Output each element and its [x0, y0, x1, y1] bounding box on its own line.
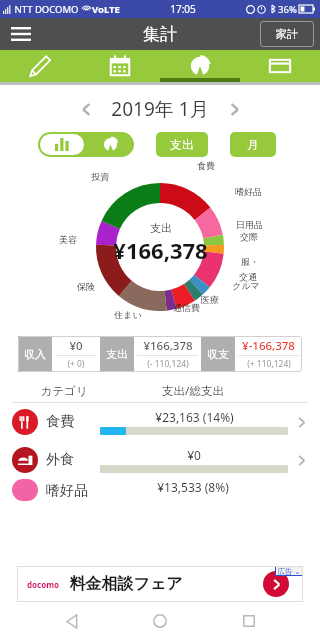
staticText: 医療: [201, 294, 219, 305]
staticText: カテゴリ: [40, 384, 88, 398]
button[interactable]: docomo: [17, 566, 303, 602]
staticText: 支出: [150, 221, 172, 235]
staticText: 外食: [46, 451, 74, 469]
button[interactable]: [38, 132, 134, 157]
button[interactable]: 支出: [156, 132, 208, 157]
staticText: 2019年 1月: [111, 96, 209, 122]
staticText: ¥0: [69, 338, 83, 354]
staticText: docomo: [27, 579, 59, 590]
button[interactable]: Previous month: [71, 94, 101, 124]
button[interactable]: 家計: [260, 21, 314, 47]
staticText: ¥0: [187, 447, 201, 463]
staticText: NTT DOCOMO: [14, 3, 79, 16]
staticText: 交通: [239, 271, 257, 282]
staticText: 嗜好品: [235, 186, 262, 197]
staticText: ¥23,163 (14%): [155, 409, 234, 425]
staticText: 支出/総支出: [162, 383, 224, 399]
staticText: 美容: [59, 234, 77, 245]
staticText: VoLTE: [92, 3, 120, 16]
staticText: 料金相談フェア: [69, 574, 183, 594]
staticText: 支出: [170, 137, 194, 152]
button[interactable]: 嗜好品: [0, 479, 320, 501]
button[interactable]: Menu: [8, 21, 34, 47]
staticText: 収入: [24, 347, 46, 361]
staticText: 支出: [106, 347, 128, 361]
button[interactable]: Accounts: [240, 50, 320, 82]
staticText: 食費: [46, 413, 74, 431]
staticText: 広告 ⌄: [277, 566, 301, 576]
staticText: 集計: [143, 24, 177, 45]
staticText: 嗜好品: [46, 482, 88, 500]
staticText: 投資: [91, 171, 109, 182]
staticText: 交際: [240, 231, 258, 242]
button[interactable]: 月: [230, 132, 276, 157]
button[interactable]: 外食: [0, 441, 320, 479]
button[interactable]: Next month: [219, 94, 249, 124]
staticText: ¥-166,378: [242, 338, 295, 354]
button[interactable]: Home: [143, 604, 177, 638]
staticText: 住まい: [114, 309, 142, 320]
staticText: 食費: [197, 160, 215, 171]
staticText: (+ 0): [67, 358, 85, 370]
button[interactable]: Back: [55, 604, 89, 638]
staticText: (+ 110,124): [247, 358, 291, 370]
staticText: ¥166,378: [143, 338, 193, 354]
button[interactable]: Input: [0, 50, 80, 82]
staticText: ¥13,533 (8%): [157, 479, 229, 495]
staticText: 収支: [207, 347, 229, 361]
staticText: 36%: [278, 3, 297, 16]
button[interactable]: Report: [160, 50, 240, 82]
staticText: 日用品: [236, 219, 263, 230]
button[interactable]: Recents: [232, 604, 266, 638]
staticText: 通信費: [173, 302, 200, 313]
button[interactable]: 食費: [0, 403, 320, 441]
staticText: ¥166,378: [113, 235, 208, 265]
staticText: 家計: [276, 27, 298, 41]
button[interactable]: Calendar: [80, 50, 160, 82]
staticText: 保険: [77, 281, 95, 292]
staticText: 月: [247, 137, 259, 152]
staticText: (- 110,124): [147, 358, 189, 370]
staticText: 服・: [241, 256, 259, 267]
staticText: クルマ: [232, 280, 260, 291]
staticText: 17:05: [170, 2, 196, 16]
